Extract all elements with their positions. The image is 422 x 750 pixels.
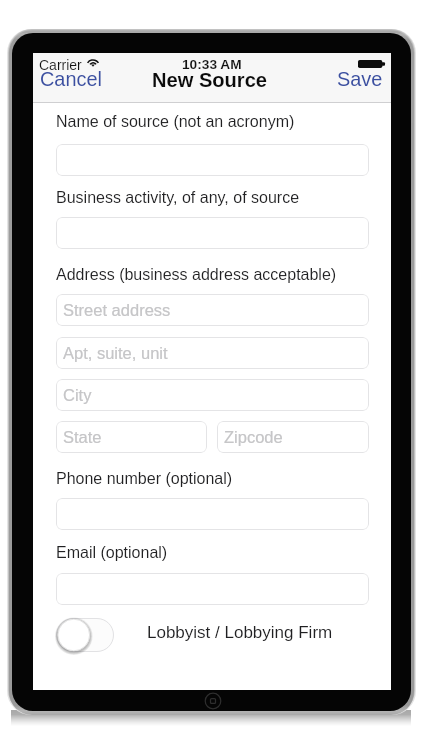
button[interactable]: Save — [335, 67, 385, 91]
button[interactable]: Cancel — [38, 67, 104, 91]
staticText: New Source — [152, 69, 268, 91]
button[interactable] — [56, 498, 369, 530]
staticText: Email (optional) — [56, 544, 168, 562]
button[interactable]: Apt, suite, unit — [56, 337, 369, 369]
staticText: Street address — [63, 301, 171, 319]
staticText: State — [63, 428, 102, 446]
staticText: Business activity, of any, of source — [56, 189, 300, 207]
staticText: Zipcode — [224, 428, 283, 446]
staticText: Address (business address acceptable) — [56, 266, 337, 284]
staticText: 10:33 AM — [182, 57, 242, 72]
staticText: Save — [337, 68, 383, 90]
button[interactable]: Zipcode — [217, 421, 369, 453]
button[interactable]: City — [56, 379, 369, 411]
button[interactable]: Street address — [56, 294, 369, 326]
button[interactable] — [56, 573, 369, 605]
button[interactable]: Lobbyist / Lobbying Firm toggle — [56, 618, 114, 652]
staticText: Name of source (not an acronym) — [56, 113, 295, 131]
staticText: Lobbyist / Lobbying Firm — [147, 623, 333, 642]
button[interactable]: Home — [204, 692, 222, 710]
staticText: City — [63, 386, 92, 404]
staticText: Carrier — [39, 57, 82, 73]
staticText: Apt, suite, unit — [63, 344, 168, 362]
button[interactable] — [56, 217, 369, 249]
staticText: Phone number (optional) — [56, 470, 233, 488]
button[interactable] — [56, 144, 369, 176]
button[interactable]: State — [56, 421, 207, 453]
staticText: Cancel — [40, 68, 102, 90]
